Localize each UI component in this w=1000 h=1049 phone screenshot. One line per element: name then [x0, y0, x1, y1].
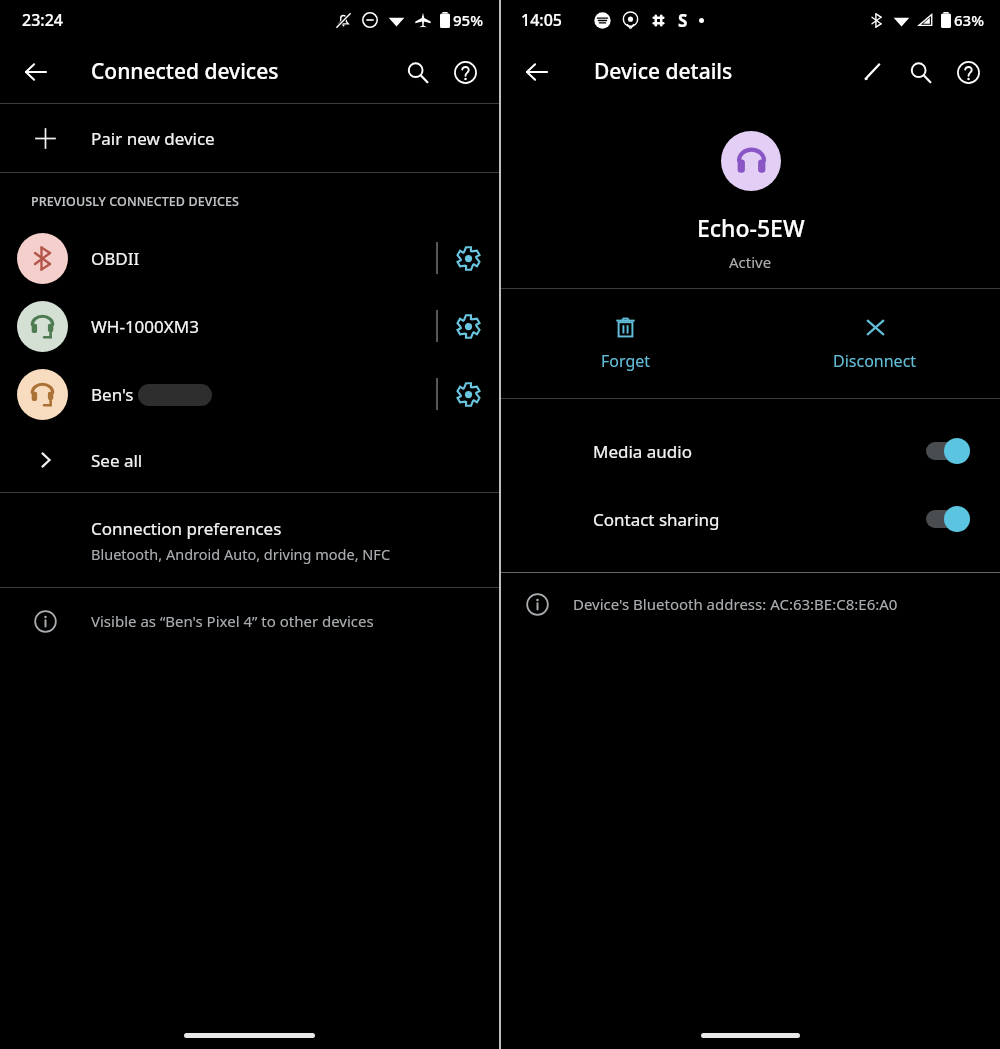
staticText: 95% — [453, 10, 483, 30]
staticText: Echo-5EW — [697, 212, 805, 243]
staticText: Disconnect — [833, 350, 917, 372]
staticText: Device's Bluetooth address: AC:63:BE:C8:… — [573, 594, 898, 614]
staticText: See all — [91, 449, 143, 472]
button[interactable]: Back — [513, 48, 561, 96]
staticText: Media audio — [593, 440, 926, 463]
button[interactable]: Rename — [848, 48, 896, 96]
button[interactable]: Back — [12, 48, 60, 96]
button[interactable]: Help — [944, 48, 992, 96]
staticText: Connection preferences — [91, 517, 282, 540]
button[interactable]: WH-1000XM3 — [0, 292, 499, 360]
staticText: WH-1000XM3 — [91, 315, 199, 338]
staticText: Visible as “Ben's Pixel 4” to other devi… — [91, 611, 374, 631]
button[interactable]: Search — [896, 48, 944, 96]
button[interactable]: Disconnect — [750, 289, 1000, 398]
staticText: 14:05 — [521, 9, 562, 31]
staticText: 63% — [954, 10, 984, 30]
staticText: OBDII — [91, 247, 140, 270]
staticText: Forget — [601, 350, 651, 372]
staticText: Contact sharing — [593, 508, 926, 531]
button[interactable]: Help — [441, 48, 489, 96]
staticText: Ben's — [91, 383, 134, 406]
staticText: S — [678, 9, 688, 32]
staticText: Connected devices — [91, 57, 279, 86]
button[interactable]: See all — [0, 428, 499, 492]
staticText: Active — [729, 252, 772, 272]
button[interactable]: Pair new device — [0, 104, 499, 172]
button[interactable]: Connection preferences — [0, 493, 499, 587]
button[interactable]: Media audio — [501, 417, 1000, 485]
button[interactable]: Forget — [501, 289, 750, 398]
button[interactable]: Ben's — [0, 360, 499, 428]
button[interactable]: Device settings — [438, 292, 499, 360]
button[interactable]: Contact sharing — [501, 485, 1000, 553]
staticText: Device details — [594, 57, 733, 86]
staticText: 23:24 — [22, 9, 63, 31]
staticText: PREVIOUSLY CONNECTED DEVICES — [31, 193, 240, 210]
staticText: Pair new device — [91, 127, 215, 150]
staticText: Bluetooth, Android Auto, driving mode, N… — [91, 544, 391, 564]
button[interactable]: Search — [393, 48, 441, 96]
button[interactable]: Device settings — [438, 224, 499, 292]
button[interactable]: Device settings — [438, 360, 499, 428]
button[interactable]: OBDII — [0, 224, 499, 292]
